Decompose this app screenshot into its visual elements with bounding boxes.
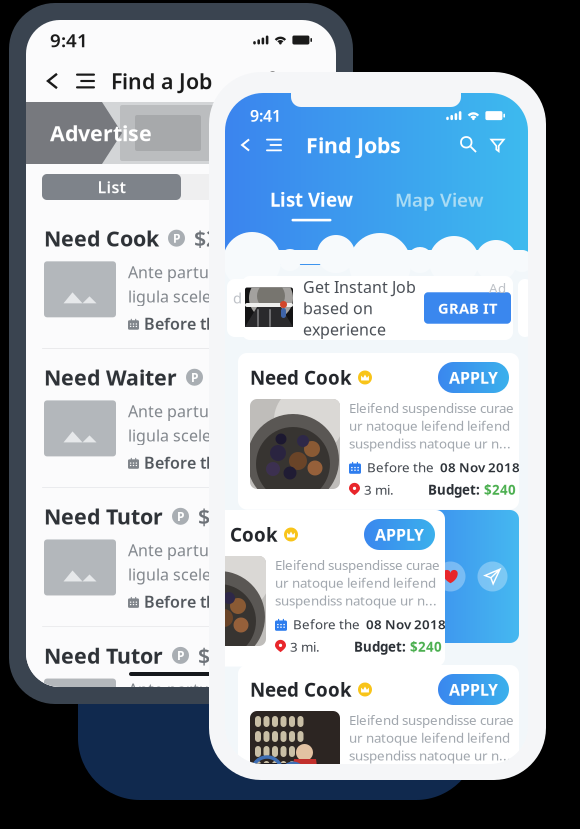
button[interactable]: Menu — [259, 132, 289, 158]
staticText: Before the 19 — [144, 730, 247, 751]
staticText: Before the — [367, 458, 434, 476]
staticText: Budget: — [428, 793, 480, 810]
staticText: Before the — [293, 615, 360, 633]
staticText: Budget: — [428, 481, 480, 498]
staticText: Need Tutor — [44, 641, 163, 669]
staticText: ur natoque leifend leifend — [349, 417, 510, 434]
staticText: Map View — [395, 187, 483, 212]
staticText: $240 — [484, 481, 516, 498]
button[interactable]: GRAB IT — [424, 292, 511, 324]
button[interactable]: APPLY — [438, 362, 509, 393]
staticText: Need Cook — [176, 522, 278, 547]
staticText: Need Cook — [250, 677, 352, 702]
staticText: APPLY — [375, 524, 424, 545]
staticText: suspendiss natoque ur n... — [275, 591, 437, 609]
staticText: Ante parturient a — [128, 539, 258, 561]
staticText: ligula scelerisque — [128, 564, 259, 585]
staticText: ligula scelerisque — [128, 425, 259, 446]
button[interactable]: Map View — [395, 187, 483, 221]
staticText: P — [177, 647, 184, 663]
staticText: $240 — [194, 224, 242, 252]
staticText: APPLY — [449, 679, 498, 700]
staticText: Eleifend suspendisse curae — [349, 399, 514, 417]
staticText: suspendiss natoque ur n... — [349, 746, 511, 764]
staticText: 9:41 — [250, 105, 281, 126]
button[interactable]: Back — [233, 132, 259, 158]
staticText: 9:41 — [50, 28, 88, 52]
staticText: Advertise — [50, 119, 152, 147]
button[interactable]: Favourite — [435, 561, 465, 591]
staticText: Eleifend suspendisse curae — [349, 711, 514, 729]
staticText: 08 Nov 2018 — [440, 458, 520, 476]
staticText: Before the 19 — [144, 452, 247, 473]
staticText: $240 — [410, 638, 442, 655]
staticText: Need Cook — [250, 365, 352, 390]
staticText: 3 mi. — [364, 793, 394, 810]
staticText: Before the 19 — [144, 591, 247, 612]
staticText: experience — [303, 319, 386, 340]
button[interactable]: Share — [477, 561, 507, 591]
staticText: GRAB IT — [438, 298, 497, 318]
staticText: Ad — [489, 279, 506, 297]
staticText: Eleifend suspendisse curae — [275, 556, 440, 574]
button[interactable]: List View — [270, 187, 353, 221]
staticText: Need Waiter — [44, 363, 177, 391]
staticText: suspendiss natoque ur n... — [349, 434, 511, 452]
staticText: P — [191, 369, 198, 385]
staticText: Get Instant Job — [303, 276, 416, 297]
staticText: Budget: — [354, 638, 406, 655]
staticText: 08 Nov 2018 — [440, 770, 520, 788]
button[interactable]: APPLY — [364, 519, 435, 550]
staticText: ligula scelerisque — [128, 703, 259, 724]
staticText: List — [97, 176, 125, 198]
staticText: ur natoque leifend leifend — [275, 574, 436, 591]
staticText: APPLY — [449, 367, 498, 388]
staticText: Need Cook — [44, 224, 159, 252]
staticText: $340 — [198, 502, 246, 530]
staticText: List View — [270, 187, 353, 212]
button[interactable]: Filter — [483, 130, 512, 159]
staticText: $340 — [198, 641, 246, 669]
staticText: 08 Nov 2018 — [366, 615, 446, 633]
staticText: based on — [303, 297, 373, 319]
staticText: 3 mi. — [290, 638, 320, 655]
staticText: Before the — [367, 770, 434, 788]
staticText: Find Jobs — [306, 131, 401, 159]
staticText: P — [177, 508, 184, 524]
staticText: Ante parturient a — [128, 679, 258, 700]
staticText: d — [233, 288, 242, 307]
staticText: ligula scelerisque — [128, 286, 259, 307]
staticText: Ante parturient a — [128, 261, 258, 282]
staticText: Ante parturient a — [128, 400, 258, 422]
staticText: 3 mi. — [364, 481, 394, 498]
staticText: $99 — [212, 363, 248, 391]
staticText: Need Tutor — [44, 502, 163, 530]
staticText: P — [173, 230, 180, 246]
staticText: ur natoque leifend leifend — [349, 729, 510, 746]
staticText: Before the 19 — [144, 313, 247, 334]
button[interactable]: APPLY — [438, 674, 509, 705]
staticText: Find a Job — [111, 67, 212, 95]
button[interactable]: Search — [455, 131, 483, 159]
